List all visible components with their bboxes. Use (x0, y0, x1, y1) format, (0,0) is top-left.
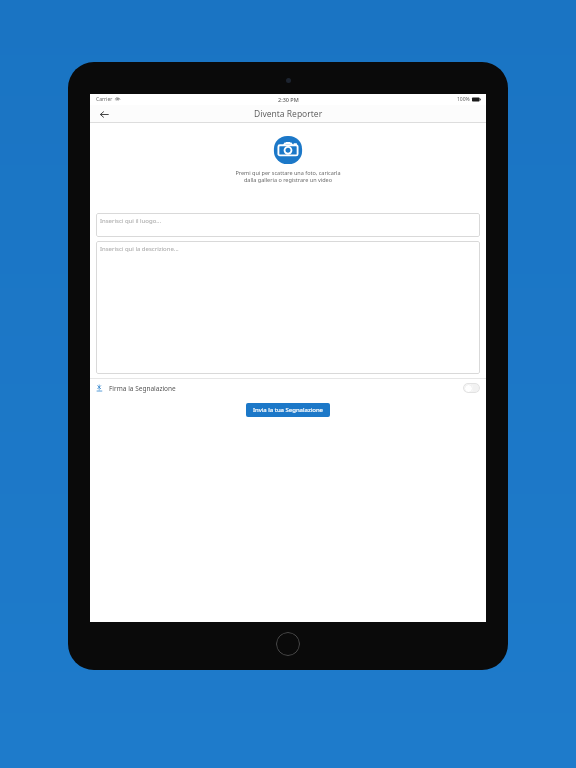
staticText: Firma la Segnalazione (109, 384, 176, 393)
staticText: Premi qui per scattare una foto, caricar… (235, 169, 341, 183)
staticText: 100% (457, 96, 470, 103)
button[interactable]: Scatta una foto (90, 135, 486, 183)
staticText: Invia la tua Segnalazione (253, 406, 323, 414)
other: Scatta una foto (273, 135, 303, 165)
button[interactable]: Inserisci qui la descrizione... (96, 241, 480, 374)
staticText: Carrier (96, 96, 113, 103)
staticText: Inserisci qui il luogo... (100, 217, 162, 225)
staticText: Inserisci qui la descrizione... (100, 245, 179, 253)
button[interactable]: Firma la Segnalazione toggle (463, 383, 480, 393)
button[interactable]: Invia la tua Segnalazione (246, 403, 330, 417)
button[interactable]: Firma la Segnalazione (90, 379, 486, 397)
staticText: Diventa Reporter (254, 108, 323, 120)
staticText: 2:30 PM (278, 96, 299, 103)
button[interactable]: Back (94, 105, 114, 123)
button[interactable]: Inserisci qui il luogo... (96, 213, 480, 237)
